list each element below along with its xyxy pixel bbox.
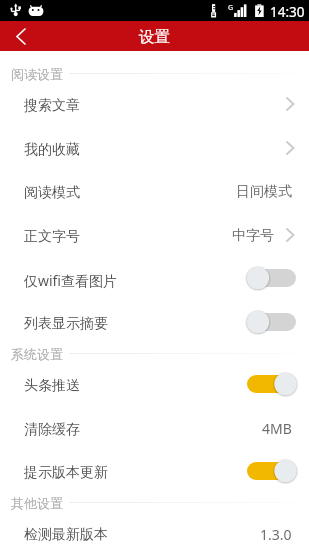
staticText: 阅读设置 <box>11 66 63 82</box>
staticText: 阅读模式 <box>24 184 80 202</box>
staticText: 中字号 <box>232 227 274 245</box>
staticText: 其他设置 <box>11 495 63 511</box>
button[interactable]: 清除缓存 <box>0 406 309 449</box>
button[interactable]: Back <box>0 21 42 51</box>
button[interactable]: 检测最新版本 <box>0 511 309 550</box>
button[interactable]: 提示版本更新 <box>0 449 309 493</box>
staticText: 14:30 <box>270 3 305 21</box>
staticText: 列表显示摘要 <box>24 315 108 333</box>
button[interactable]: 我的收藏 <box>0 126 309 169</box>
staticText: 清除缓存 <box>24 421 80 439</box>
staticText: 搜索文章 <box>24 97 80 115</box>
staticText: 头条推送 <box>24 377 80 395</box>
staticText: 仅wifi查看图片 <box>24 271 118 290</box>
button[interactable]: 仅wifi查看图片 <box>0 256 309 300</box>
button[interactable]: 阅读模式 <box>0 169 309 213</box>
button[interactable]: 头条推送 <box>0 362 309 406</box>
button[interactable]: 正文字号 <box>0 213 309 256</box>
staticText: 4MB <box>262 419 292 438</box>
staticText: 我的收藏 <box>24 141 80 159</box>
staticText: G <box>228 3 234 13</box>
staticText: 日间模式 <box>236 183 292 201</box>
staticText: 正文字号 <box>24 228 80 246</box>
staticText: 提示版本更新 <box>24 464 108 482</box>
staticText: 1.3.0 <box>260 525 292 544</box>
staticText: 设置 <box>139 27 170 47</box>
button[interactable]: 搜索文章 <box>0 82 309 126</box>
staticText: 系统设置 <box>11 346 63 362</box>
button[interactable]: 列表显示摘要 <box>0 300 309 344</box>
staticText: 检测最新版本 <box>24 526 108 544</box>
